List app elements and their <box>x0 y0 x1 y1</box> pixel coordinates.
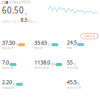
staticText: kg以上 <box>28 20 37 23</box>
staticText: 体内年齢 <box>67 66 79 70</box>
staticText: 体脂肪率 <box>2 46 14 50</box>
staticText: 45.5 <box>67 79 77 86</box>
staticText: 7.0 <box>2 59 9 66</box>
staticText: kg <box>12 82 15 86</box>
staticText: 1138.0 <box>34 59 50 66</box>
staticText: 35.65 <box>34 39 47 46</box>
staticText: 歳 <box>73 63 76 66</box>
staticText: 8.5 <box>20 16 27 23</box>
staticText: BMI <box>67 46 72 50</box>
staticText: 内臓脂肪 <box>2 86 14 89</box>
staticText: 2.20 <box>2 79 12 86</box>
staticText: 目標まであと <box>2 20 20 23</box>
staticText: 37.50 <box>2 39 15 46</box>
staticText: 筋肉量 <box>34 46 43 50</box>
staticText: 体内年齢 <box>2 66 14 70</box>
staticText: 41%以上99:99 <box>9 1 30 4</box>
button[interactable]: 記録する <box>81 33 98 39</box>
staticText: kg <box>24 12 27 16</box>
staticText: 24.5 <box>67 39 77 46</box>
staticText: kcal <box>51 62 55 66</box>
staticText: 体内水分率 <box>67 86 82 89</box>
staticText: % <box>77 82 79 86</box>
staticText: 記録する <box>83 34 95 38</box>
staticText: kg <box>48 43 51 46</box>
staticText: % <box>15 43 17 46</box>
staticText: 55 <box>67 59 73 66</box>
staticText: 60.50 <box>2 5 24 16</box>
staticText: 基礎代謝量 <box>34 66 49 70</box>
